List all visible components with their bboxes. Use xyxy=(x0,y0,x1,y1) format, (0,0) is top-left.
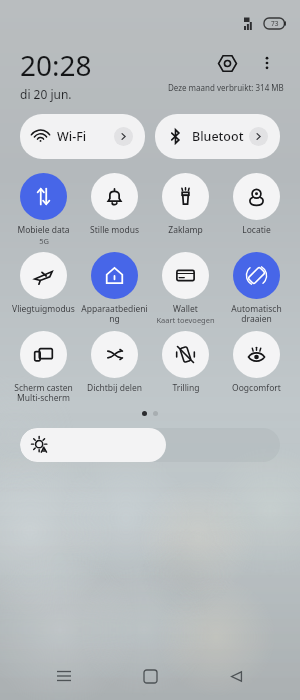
button[interactable]: Home xyxy=(128,654,172,698)
button[interactable]: Mobiele data xyxy=(8,173,79,246)
button[interactable]: Automatisch draaien xyxy=(221,252,292,324)
staticText: Kaart toevoegen xyxy=(156,315,215,325)
staticText: Locatie xyxy=(242,224,271,236)
button[interactable]: More options xyxy=(250,46,284,80)
staticText: Wi-Fi xyxy=(57,128,114,145)
button[interactable]: Oogcomfort xyxy=(221,331,292,394)
button[interactable]: Dichtbij delen xyxy=(79,331,150,394)
button[interactable]: Vliegtuigmodus xyxy=(8,252,79,315)
staticText: Deze maand verbruikt: 314 MB xyxy=(168,82,284,93)
staticText: Automatisch draaien xyxy=(221,303,292,324)
button[interactable]: Wallet xyxy=(150,252,221,325)
button[interactable]: Stille modus xyxy=(79,173,150,236)
staticText: Apparaatbediening xyxy=(79,303,150,324)
staticText: Wallet xyxy=(173,303,198,315)
staticText: Oogcomfort xyxy=(232,382,281,394)
button[interactable]: Back xyxy=(214,654,258,698)
staticText: 20:28 xyxy=(20,46,92,84)
staticText: Zaklamp xyxy=(168,224,203,236)
button[interactable]: Bluetooth xyxy=(155,114,280,159)
button[interactable]: Locatie xyxy=(221,173,292,236)
button[interactable]: Settings xyxy=(210,46,244,80)
staticText: Dichtbij delen xyxy=(87,382,142,394)
staticText: Trilling xyxy=(172,382,200,394)
staticText: 73 xyxy=(271,19,279,28)
staticText: Stille modus xyxy=(90,224,139,236)
staticText: 5G xyxy=(39,236,49,246)
staticText: Mobiele data xyxy=(17,224,70,236)
button[interactable]: Scherm casten Multi-scherm xyxy=(8,331,79,403)
staticText: Bluetooth xyxy=(192,128,249,145)
button[interactable]: Zaklamp xyxy=(150,173,221,236)
staticText: di 20 jun. xyxy=(20,86,72,102)
button[interactable]: Apparaatbediening xyxy=(79,252,150,324)
button[interactable]: Brightness xyxy=(20,428,280,462)
staticText: Scherm casten Multi-scherm xyxy=(8,382,79,403)
staticText: Vliegtuigmodus xyxy=(12,303,75,315)
button[interactable]: Wi-Fi xyxy=(20,114,145,159)
button[interactable]: Recents xyxy=(42,654,86,698)
button[interactable]: Trilling xyxy=(150,331,221,394)
